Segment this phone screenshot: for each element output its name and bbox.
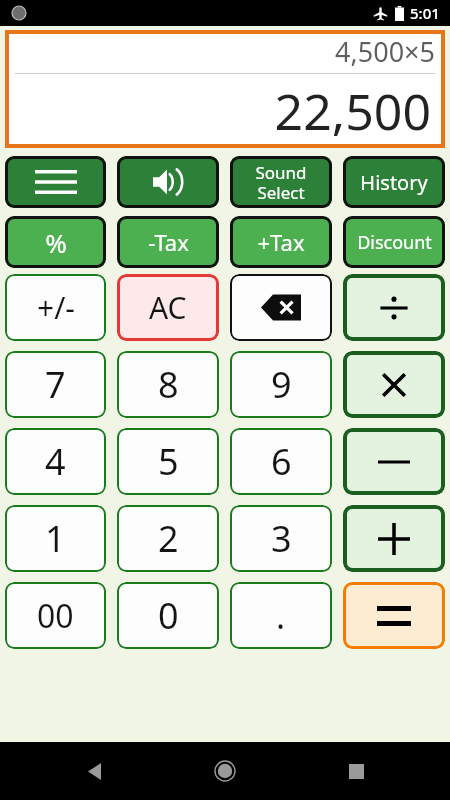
button[interactable]: 5	[117, 428, 219, 495]
staticText: +Tax	[257, 227, 305, 257]
button[interactable]: Sound Select	[230, 156, 332, 208]
button[interactable]: 3	[230, 505, 332, 572]
staticText: +/-	[37, 287, 75, 328]
button[interactable]: 1	[5, 505, 106, 572]
button[interactable]: AC	[117, 274, 219, 341]
staticText: 00	[37, 594, 74, 638]
button[interactable]: Back	[70, 747, 118, 795]
button[interactable]: 8	[117, 351, 219, 418]
button[interactable]	[343, 351, 445, 418]
staticText: 5:01	[410, 3, 440, 23]
button[interactable]: 7	[5, 351, 106, 418]
staticText: .	[276, 593, 286, 639]
staticText: 4	[45, 437, 66, 486]
button[interactable]	[343, 428, 445, 495]
staticText: 8	[158, 360, 179, 409]
button[interactable]: 2	[117, 505, 219, 572]
staticText: 7	[45, 360, 66, 409]
button[interactable]: Menu	[5, 156, 106, 208]
button[interactable]: 00	[5, 582, 106, 649]
button[interactable]: 0	[117, 582, 219, 649]
button[interactable]: %	[5, 216, 106, 268]
button[interactable]	[343, 505, 445, 572]
button[interactable]: Sound on	[117, 156, 219, 208]
staticText: 6	[271, 437, 292, 486]
staticText: History	[360, 169, 428, 196]
staticText: 5	[158, 437, 179, 486]
button[interactable]	[343, 582, 445, 649]
button[interactable]: 4	[5, 428, 106, 495]
staticText: 3	[271, 514, 292, 563]
staticText: Discount	[357, 230, 432, 255]
staticText: 1	[45, 514, 66, 563]
staticText: 0	[158, 591, 179, 640]
button[interactable]: History	[343, 156, 445, 208]
staticText: 4,500×5	[335, 33, 435, 70]
button[interactable]: Home	[201, 747, 249, 795]
button[interactable]: 9	[230, 351, 332, 418]
staticText: 22,500	[274, 77, 431, 145]
staticText: -Tax	[148, 227, 189, 257]
button[interactable]: 6	[230, 428, 332, 495]
staticText: Sound Select	[255, 161, 307, 204]
button[interactable]: Backspace	[230, 274, 332, 341]
button[interactable]: +Tax	[230, 216, 332, 268]
button[interactable]: Recent apps	[332, 747, 380, 795]
button[interactable]: Discount	[343, 216, 445, 268]
button[interactable]	[343, 274, 445, 341]
staticText: AC	[149, 287, 187, 328]
button[interactable]: .	[230, 582, 332, 649]
staticText: 9	[271, 360, 292, 409]
staticText: %	[45, 225, 67, 260]
button[interactable]: +/-	[5, 274, 106, 341]
staticText: 2	[158, 514, 179, 563]
button[interactable]: -Tax	[117, 216, 219, 268]
